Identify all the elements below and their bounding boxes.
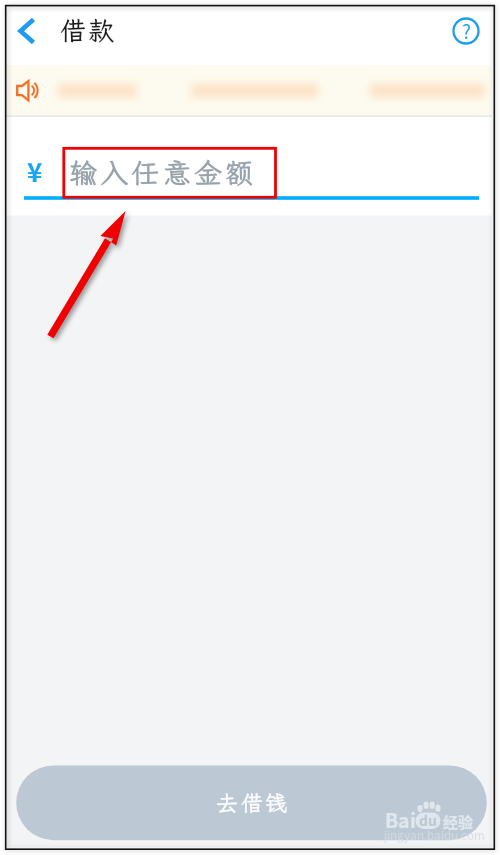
button[interactable]: 去借钱 (16, 765, 487, 840)
button[interactable]: Back (6, 6, 54, 56)
button[interactable]: Help (442, 6, 492, 56)
button[interactable]: Announcement (6, 66, 492, 116)
button[interactable]: 输入任意金额 (6, 120, 492, 200)
